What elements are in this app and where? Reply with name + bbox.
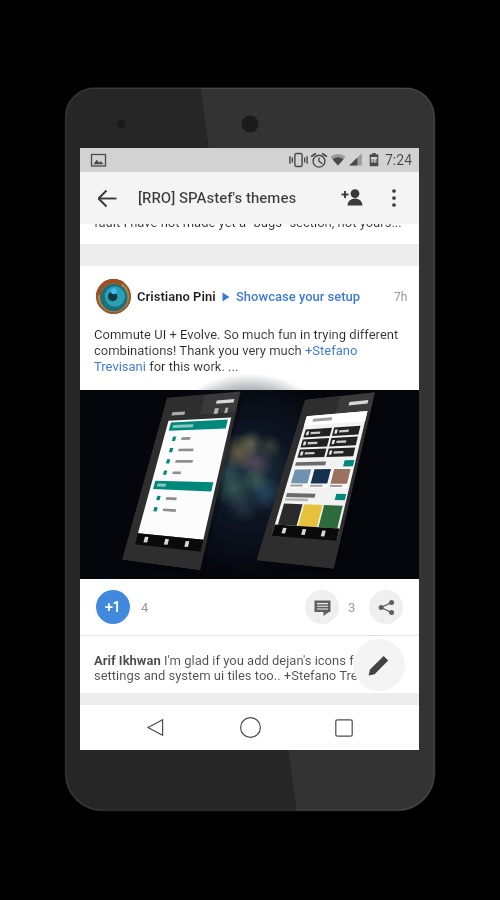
staticText: Arif Ikhwan I'm glad if you add dejan's …	[94, 653, 405, 683]
staticText: [RRO] SPAstef's themes	[138, 189, 297, 207]
button[interactable]: +1	[96, 590, 130, 624]
staticText: 84	[371, 157, 378, 164]
button[interactable]: Back	[108, 705, 203, 750]
button[interactable]: Arif Ikhwan I'm glad if you add dejan's …	[80, 636, 419, 693]
button[interactable]: Home	[203, 705, 297, 750]
button[interactable]: Comment	[305, 590, 339, 624]
staticText: 4	[141, 600, 149, 615]
staticText: Showcase your setup	[236, 289, 361, 304]
button[interactable]: fault I have not made yet a "bugs" secti…	[80, 224, 419, 244]
staticText: 7h	[394, 290, 408, 304]
button[interactable]: Create post	[353, 639, 405, 691]
button[interactable]: Recent apps	[297, 705, 391, 750]
staticText: Cristiano Pini	[137, 289, 216, 304]
button[interactable]: More options	[375, 172, 413, 224]
button[interactable]: Cristiano Pini	[96, 266, 408, 327]
staticText: 3	[348, 600, 356, 615]
button[interactable]: Add people	[329, 172, 375, 224]
staticText: fault I have not made yet a "bugs" secti…	[94, 224, 402, 230]
button[interactable]: Navigate up	[80, 172, 135, 224]
staticText: 7:24	[385, 152, 412, 168]
staticText: Commute UI + Evolve. So much fun in tryi…	[94, 327, 405, 374]
button[interactable]: Share	[369, 590, 403, 624]
staticText: +1	[105, 599, 121, 615]
